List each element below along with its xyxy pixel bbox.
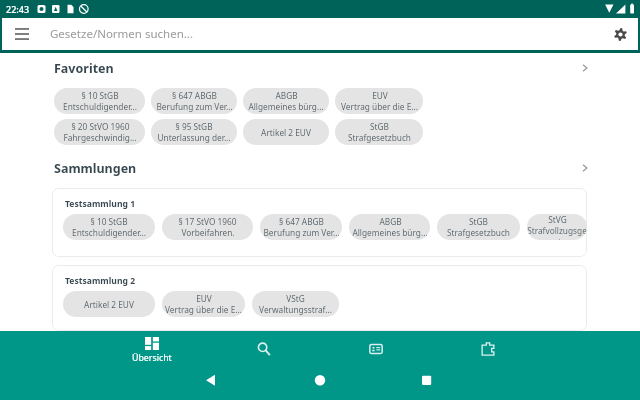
staticText: § 95 StGB bbox=[175, 121, 213, 132]
staticText: Sammlungen bbox=[54, 160, 137, 177]
button[interactable]: § 95 StGB bbox=[151, 119, 237, 145]
button[interactable]: Sammlungen bbox=[0, 157, 640, 179]
button[interactable]: VStG bbox=[252, 291, 339, 317]
staticText: Allgemeines bürg... bbox=[352, 227, 428, 238]
button[interactable]: § 20 StVO 1960 bbox=[54, 119, 145, 145]
button[interactable]: ABGB bbox=[243, 88, 329, 114]
staticText: 22:43 bbox=[6, 3, 30, 15]
staticText: Artikel 2 EUV bbox=[261, 127, 311, 138]
staticText: § 10 StGB bbox=[81, 90, 119, 101]
staticText: ABGB bbox=[379, 216, 402, 227]
button[interactable]: Menu bbox=[2, 18, 42, 50]
staticText: Verwaltungsstraf... bbox=[259, 304, 332, 315]
staticText: Vertrag über die E... bbox=[341, 101, 418, 112]
staticText: Berufung zum Ver... bbox=[263, 227, 340, 238]
staticText: Vorbeifahren. bbox=[181, 227, 235, 238]
button[interactable]: EUV bbox=[335, 88, 423, 114]
button[interactable]: StGB bbox=[335, 119, 423, 145]
button[interactable]: Favoriten bbox=[0, 57, 640, 79]
staticText: Entschuldigender... bbox=[72, 227, 146, 238]
staticText: Gesetze/Normen suchen... bbox=[50, 26, 194, 42]
staticText: Berufung zum Ver... bbox=[156, 101, 233, 112]
staticText: Entschuldigender... bbox=[63, 101, 137, 112]
staticText: Vertrag über die E... bbox=[165, 304, 242, 315]
staticText: Testsammlung 1 bbox=[65, 198, 136, 210]
button[interactable]: Settings bbox=[602, 18, 638, 50]
staticText: Strafgesetzbuch bbox=[447, 227, 510, 238]
staticText: Favoriten bbox=[54, 60, 114, 77]
button[interactable]: StVG bbox=[527, 214, 587, 240]
staticText: Artikel 2 EUV bbox=[84, 299, 134, 310]
staticText: Fahrgeschwindig... bbox=[63, 132, 137, 143]
button[interactable]: Artikel 2 EUV bbox=[63, 291, 155, 317]
staticText: StVG bbox=[548, 214, 567, 225]
button[interactable]: § 10 StGB bbox=[54, 88, 145, 114]
button[interactable]: StGB bbox=[437, 214, 520, 240]
button[interactable]: Cards bbox=[320, 331, 432, 366]
button[interactable]: Search bbox=[208, 331, 320, 366]
staticText: Unterlassung der... bbox=[157, 132, 231, 143]
button[interactable]: Artikel 2 EUV bbox=[243, 119, 329, 145]
staticText: ABGB bbox=[275, 90, 298, 101]
button[interactable]: § 17 StVO 1960 bbox=[162, 214, 253, 240]
staticText: § 17 StVO 1960 bbox=[178, 216, 237, 227]
staticText: VStG bbox=[286, 293, 305, 304]
button[interactable]: ABGB bbox=[349, 214, 430, 240]
staticText: § 647 ABGB bbox=[279, 216, 324, 227]
button[interactable]: EUV bbox=[162, 291, 245, 317]
staticText: Strafgesetzbuch bbox=[348, 132, 411, 143]
button[interactable]: § 647 ABGB bbox=[151, 88, 237, 114]
staticText: Übersicht bbox=[132, 352, 172, 364]
button[interactable]: Extensions bbox=[432, 331, 544, 366]
staticText: StGB bbox=[370, 121, 389, 132]
staticText: § 20 StVO 1960 bbox=[71, 121, 130, 132]
staticText: EUV bbox=[372, 90, 388, 101]
button[interactable]: § 10 StGB bbox=[63, 214, 155, 240]
staticText: § 647 ABGB bbox=[172, 90, 217, 101]
staticText: § 10 StGB bbox=[90, 216, 128, 227]
staticText: Allgemeines bürg... bbox=[248, 101, 324, 112]
staticText: Strafvollzugsgesetz bbox=[527, 225, 587, 240]
button[interactable]: Übersicht bbox=[96, 331, 208, 366]
staticText: Testsammlung 2 bbox=[65, 275, 136, 287]
button[interactable]: § 647 ABGB bbox=[260, 214, 342, 240]
staticText: EUV bbox=[196, 293, 212, 304]
staticText: StGB bbox=[469, 216, 488, 227]
